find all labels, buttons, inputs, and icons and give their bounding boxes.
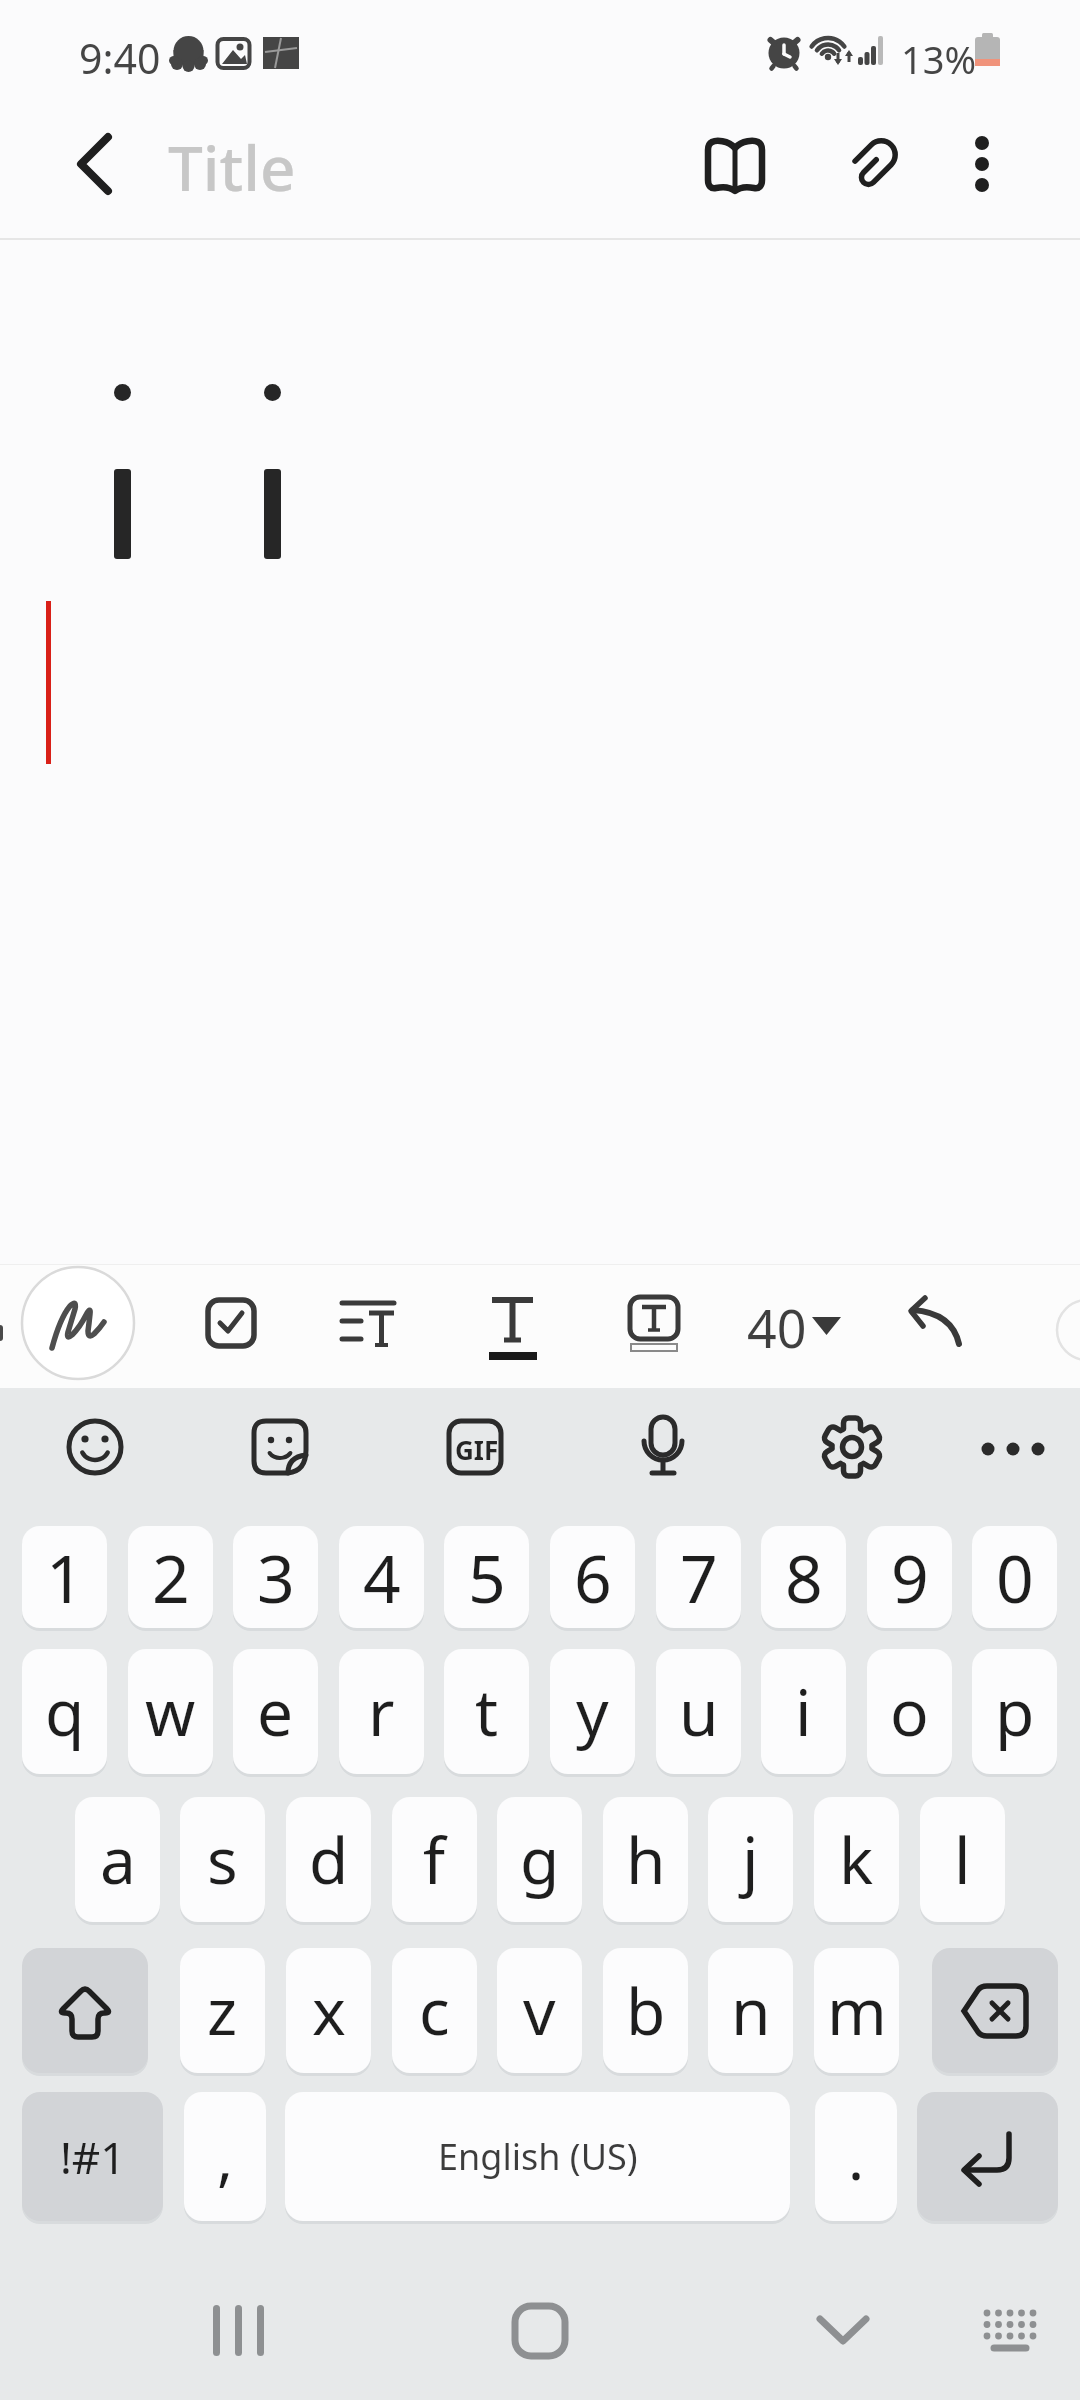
button[interactable]: !#1 (22, 2092, 163, 2221)
staticText: s (207, 1816, 238, 1903)
button[interactable] (60, 1412, 130, 1482)
button[interactable]: 7 (656, 1526, 741, 1628)
button[interactable] (495, 2290, 585, 2380)
button[interactable]: q (22, 1649, 107, 1774)
staticText: 7 (680, 1532, 718, 1622)
button[interactable]: g (497, 1797, 582, 1922)
staticText: d (309, 1816, 349, 1903)
button[interactable]: n (708, 1948, 793, 2073)
button[interactable]: l (920, 1797, 1005, 1922)
staticText: r (368, 1668, 395, 1755)
button[interactable] (900, 1288, 970, 1358)
button[interactable] (196, 1288, 266, 1358)
button[interactable]: a (75, 1797, 160, 1922)
button[interactable]: , (184, 2092, 266, 2221)
staticText: Title (168, 125, 296, 209)
staticText: x (312, 1967, 346, 2054)
button[interactable]: 8 (761, 1526, 846, 1628)
staticText: 9 (891, 1532, 929, 1622)
button[interactable] (22, 1267, 135, 1380)
button[interactable]: u (656, 1649, 741, 1774)
staticText: q (45, 1668, 85, 1755)
button[interactable] (619, 1288, 689, 1358)
button[interactable]: m (814, 1948, 899, 2073)
staticText: 13% (901, 33, 977, 85)
button[interactable]: English (US) (285, 2092, 790, 2221)
button[interactable]: 1 (22, 1526, 107, 1628)
button[interactable] (40, 125, 150, 205)
button[interactable]: 2 (128, 1526, 213, 1628)
button[interactable] (978, 1412, 1048, 1482)
button[interactable] (478, 1288, 548, 1358)
button[interactable]: 0 (972, 1526, 1057, 1628)
button[interactable]: 4 (339, 1526, 424, 1628)
button[interactable] (690, 120, 780, 210)
button[interactable] (628, 1412, 698, 1482)
staticText: b (626, 1967, 666, 2054)
staticText: a (100, 1816, 136, 1903)
staticText: 0 (996, 1532, 1034, 1622)
staticText: e (257, 1668, 294, 1755)
button[interactable]: w (128, 1649, 213, 1774)
staticText: c (419, 1967, 450, 2054)
staticText: , (217, 2116, 234, 2198)
button[interactable]: p (972, 1649, 1057, 1774)
button[interactable] (917, 2092, 1058, 2221)
button[interactable]: 3 (233, 1526, 318, 1628)
staticText: g (520, 1816, 560, 1903)
staticText: !#1 (60, 2127, 126, 2187)
staticText: n (731, 1967, 771, 2054)
button[interactable]: d (286, 1797, 371, 1922)
button[interactable]: h (603, 1797, 688, 1922)
button[interactable]: x (286, 1948, 371, 2073)
button[interactable]: v (497, 1948, 582, 2073)
button[interactable] (932, 1948, 1058, 2073)
button[interactable]: y (550, 1649, 635, 1774)
button[interactable] (965, 2290, 1055, 2380)
staticText: t (475, 1668, 499, 1755)
button[interactable] (827, 120, 917, 210)
staticText: u (679, 1668, 719, 1755)
button[interactable]: o (867, 1649, 952, 1774)
button[interactable]: 9 (867, 1526, 952, 1628)
button[interactable]: j (708, 1797, 793, 1922)
button[interactable] (745, 1288, 845, 1358)
staticText: 3 (257, 1532, 295, 1622)
staticText: English (US) (438, 2132, 638, 2181)
staticText: y (576, 1668, 609, 1755)
button[interactable]: z (180, 1948, 265, 2073)
button[interactable] (245, 1412, 315, 1482)
staticText: w (145, 1668, 196, 1755)
staticText: 8 (785, 1532, 823, 1622)
button[interactable]: b (603, 1948, 688, 2073)
staticText: m (827, 1967, 887, 2054)
staticText: i (795, 1668, 812, 1755)
button[interactable] (440, 1412, 510, 1482)
button[interactable]: e (233, 1649, 318, 1774)
staticText: 2 (152, 1532, 190, 1622)
button[interactable]: r (339, 1649, 424, 1774)
staticText: 5 (468, 1532, 506, 1622)
button[interactable] (817, 1412, 887, 1482)
button[interactable] (798, 2290, 888, 2380)
staticText: 4 (363, 1532, 401, 1622)
button[interactable]: c (392, 1948, 477, 2073)
staticText: 40 (747, 1292, 807, 1363)
button[interactable] (22, 1948, 148, 2073)
button[interactable]: . (815, 2092, 897, 2221)
button[interactable] (330, 1288, 400, 1358)
staticText: 9:40 (79, 30, 161, 86)
button[interactable]: k (814, 1797, 899, 1922)
staticText: 6 (574, 1532, 612, 1622)
staticText: z (207, 1967, 238, 2054)
button[interactable]: t (444, 1649, 529, 1774)
button[interactable]: f (392, 1797, 477, 1922)
button[interactable] (192, 2290, 282, 2380)
staticText: l (954, 1816, 971, 1903)
button[interactable]: s (180, 1797, 265, 1922)
button[interactable]: 5 (444, 1526, 529, 1628)
button[interactable]: 6 (550, 1526, 635, 1628)
staticText: j (742, 1816, 759, 1903)
button[interactable] (940, 120, 1030, 210)
button[interactable]: i (761, 1649, 846, 1774)
